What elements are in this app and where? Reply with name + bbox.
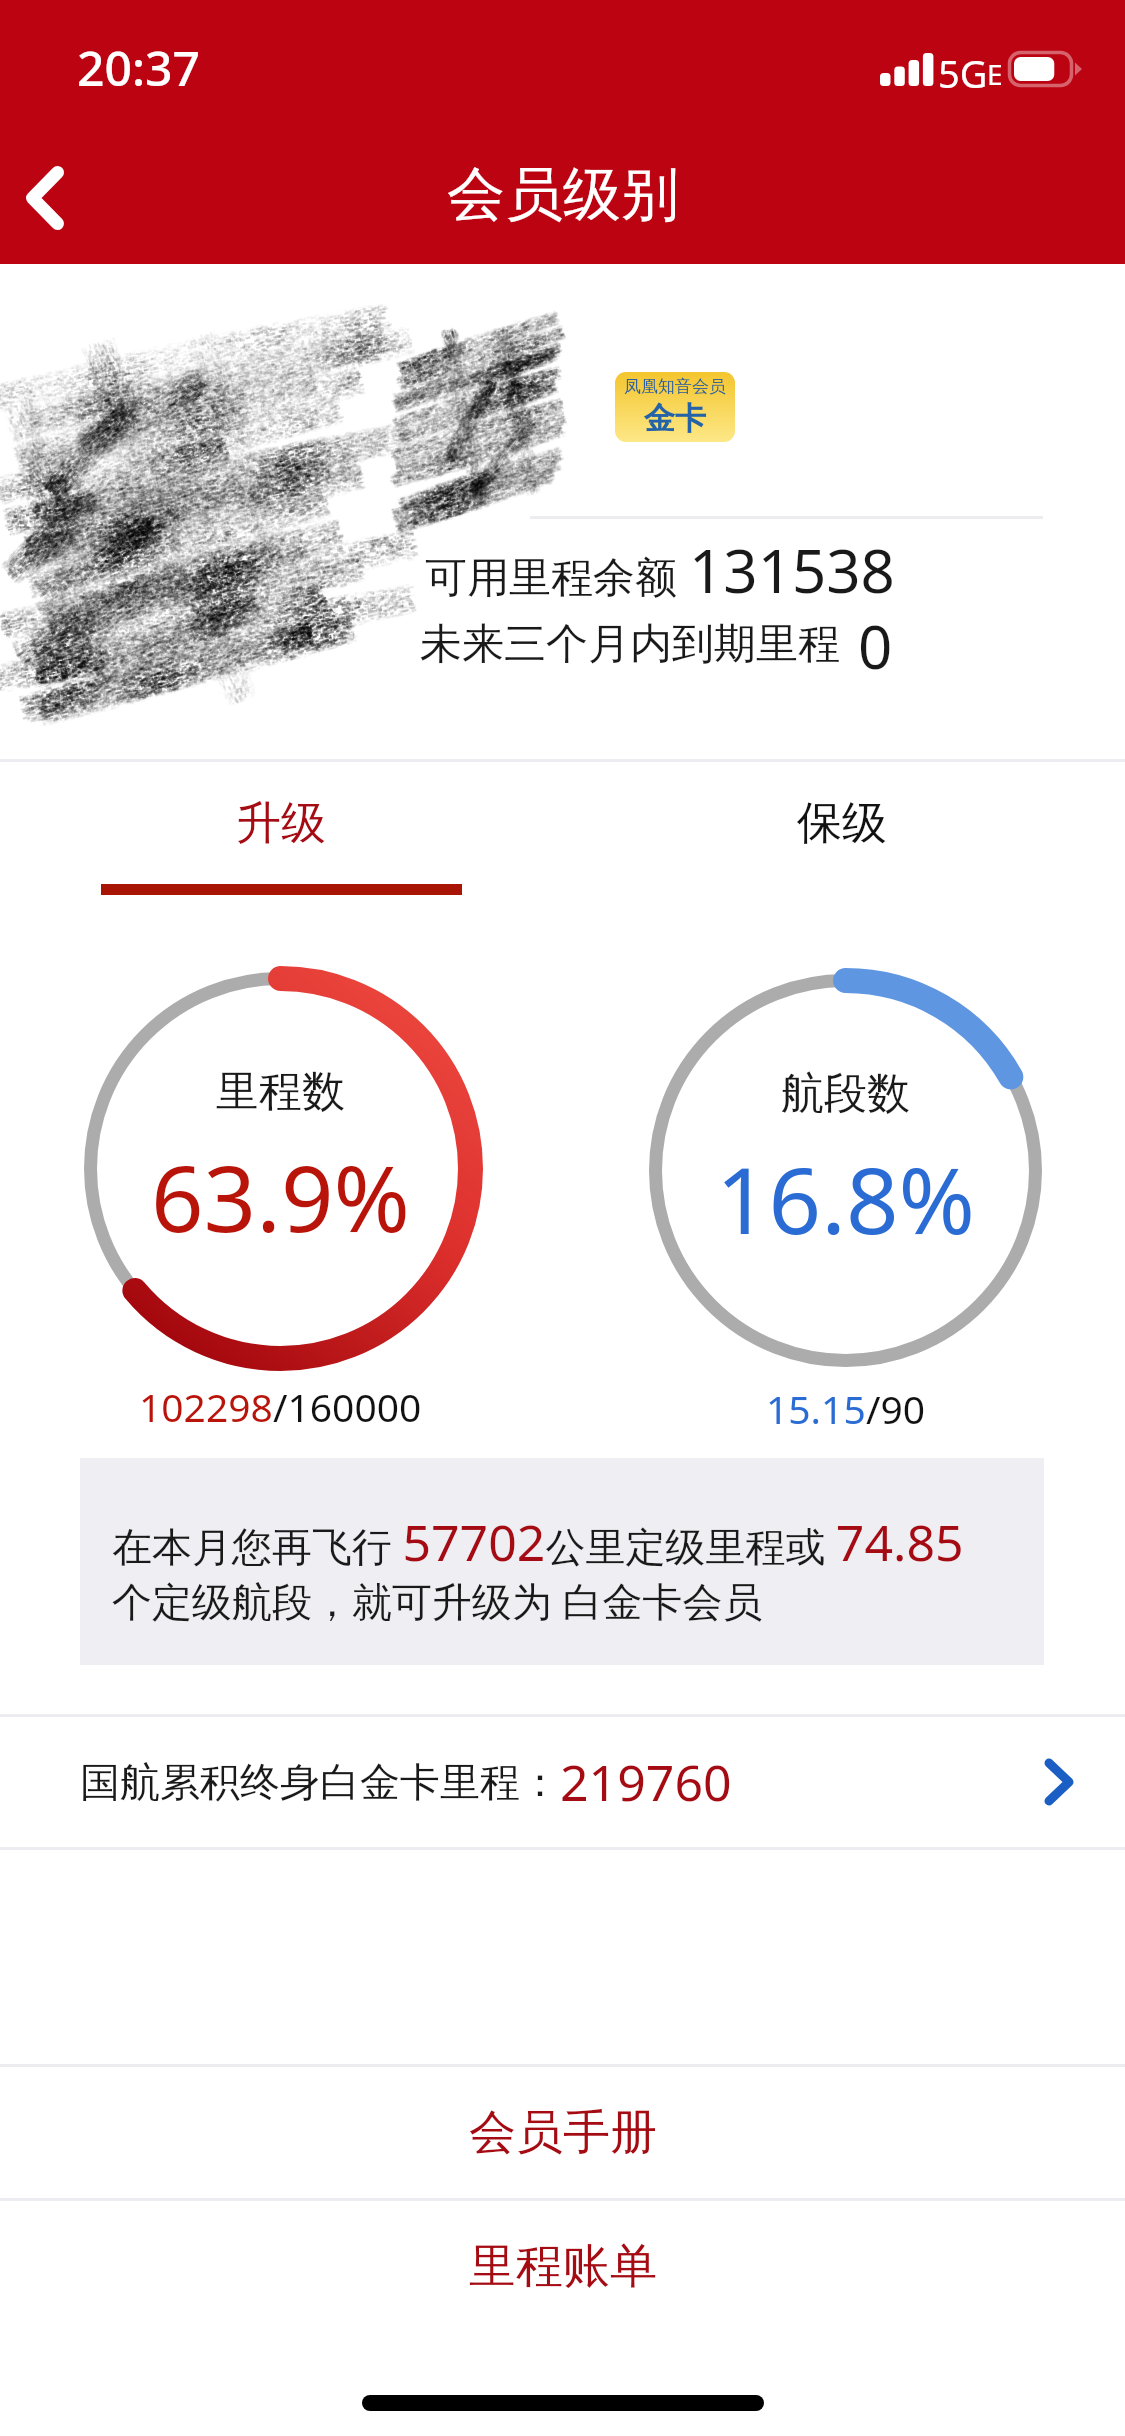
staticText: 可用里程余额 <box>425 552 677 605</box>
button[interactable]: 国航累积终身白金卡里程： <box>0 1717 1125 1847</box>
staticText: 凤凰知音会员 <box>624 376 726 397</box>
button[interactable]: 保级 <box>561 762 1123 894</box>
staticText: 63.9% <box>151 1134 410 1259</box>
button[interactable]: Back <box>0 132 118 264</box>
staticText: 20:37 <box>77 35 200 100</box>
staticText: 15.15 <box>766 1382 866 1435</box>
staticText: /90 <box>866 1382 926 1435</box>
staticText: 金卡 <box>644 399 706 438</box>
staticText: 里程数 <box>216 1065 345 1119</box>
button[interactable]: 升级 <box>0 762 562 894</box>
staticText: 131538 <box>689 529 895 611</box>
staticText: 会员级别 <box>447 158 679 231</box>
staticText: 219760 <box>560 1748 732 1816</box>
staticText: 在本月您再飞行 57702公里定级里程或 74.85 个定级航段，就可升级为 白… <box>112 1508 1022 1628</box>
button[interactable]: 会员手册 <box>0 2067 1125 2198</box>
staticText: 16.8% <box>716 1136 975 1261</box>
staticText: 会员手册 <box>469 2103 657 2162</box>
staticText: /160000 <box>273 1380 422 1433</box>
staticText: 里程账单 <box>469 2237 657 2296</box>
button[interactable]: 里程账单 <box>0 2201 1125 2332</box>
staticText: 5G <box>938 47 988 99</box>
staticText: 航段数 <box>781 1067 910 1121</box>
staticText: 未来三个月内到期里程 <box>420 618 840 671</box>
staticText: 102298 <box>139 1380 273 1433</box>
staticText: 升级 <box>236 795 326 852</box>
staticText: 保级 <box>797 795 887 852</box>
staticText: 0 <box>858 605 893 687</box>
staticText: E <box>987 55 1003 93</box>
staticText: 国航累积终身白金卡里程： <box>80 1757 560 1807</box>
